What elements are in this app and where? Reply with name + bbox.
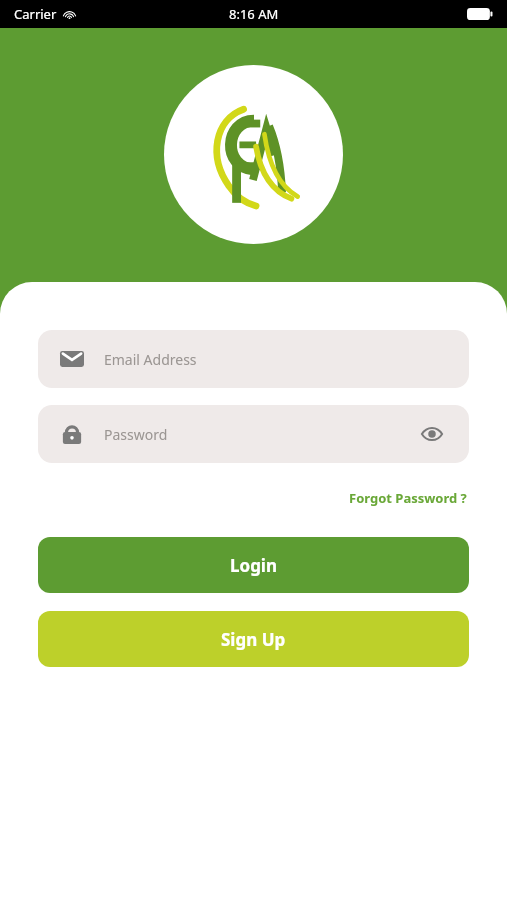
button[interactable]: Forgot Password ?: [347, 485, 469, 511]
staticText: Carrier: [14, 5, 57, 23]
staticText: Forgot Password ?: [349, 489, 467, 507]
button[interactable]: Password: [38, 405, 469, 463]
staticText: Sign Up: [221, 628, 286, 651]
button[interactable]: Email Address: [38, 330, 469, 388]
button[interactable]: Show password: [417, 419, 447, 449]
staticText: Password: [104, 425, 168, 444]
staticText: 8:16 AM: [229, 5, 279, 23]
staticText: Login: [230, 554, 278, 577]
button[interactable]: Login: [38, 537, 469, 593]
button[interactable]: Sign Up: [38, 611, 469, 667]
staticText: Email Address: [104, 350, 197, 369]
